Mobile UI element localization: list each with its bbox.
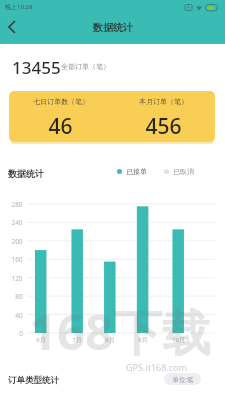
staticText: 280 bbox=[11, 200, 23, 209]
staticText: 80 bbox=[15, 292, 23, 301]
staticText: 订单类型统计 bbox=[8, 375, 59, 386]
staticText: 七日订单数（笔） bbox=[33, 97, 89, 106]
staticText: 已接单 bbox=[126, 167, 147, 176]
staticText: 46 bbox=[48, 112, 73, 141]
staticText: 9月 bbox=[138, 336, 148, 344]
staticText: 120 bbox=[11, 274, 23, 283]
staticText: 数据统计 bbox=[93, 21, 133, 34]
staticText: 168下载 bbox=[29, 298, 212, 365]
staticText: 数据统计 bbox=[8, 168, 44, 179]
button[interactable]: 七日订单数（笔） bbox=[9, 91, 112, 142]
staticText: 456 bbox=[145, 112, 182, 141]
staticText: 6月 bbox=[36, 336, 46, 344]
button[interactable]: 已取消 bbox=[164, 167, 194, 176]
staticText: 40 bbox=[15, 311, 23, 320]
staticText: 10月 bbox=[172, 336, 185, 344]
button[interactable]: 已接单 bbox=[117, 167, 147, 176]
staticText: GPS.it168.com bbox=[126, 361, 187, 373]
staticText: 本月订单（笔） bbox=[139, 97, 188, 106]
staticText: 0 bbox=[19, 329, 23, 338]
staticText: 晚上10:28 bbox=[5, 3, 33, 11]
staticText: 240 bbox=[11, 218, 23, 227]
staticText: 已取消 bbox=[173, 167, 194, 176]
staticText: 全部订单（笔） bbox=[61, 62, 110, 71]
staticText: 7月 bbox=[72, 336, 82, 344]
button[interactable]: 本月订单（笔） bbox=[112, 91, 215, 142]
button[interactable] bbox=[2, 16, 22, 38]
staticText: 200 bbox=[11, 237, 23, 246]
staticText: 单位:笔 bbox=[172, 375, 194, 384]
button[interactable]: 单位:笔 bbox=[164, 373, 201, 385]
staticText: 160 bbox=[11, 255, 23, 264]
staticText: 13455 bbox=[12, 56, 61, 79]
staticText: 8月 bbox=[105, 336, 115, 344]
